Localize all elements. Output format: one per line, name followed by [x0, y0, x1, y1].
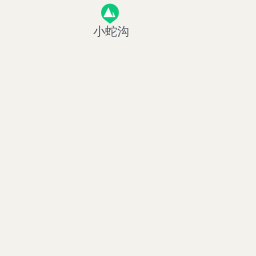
staticText: 小蛇沟 [93, 24, 129, 39]
button[interactable]: 小蛇沟 [92, 3, 128, 36]
